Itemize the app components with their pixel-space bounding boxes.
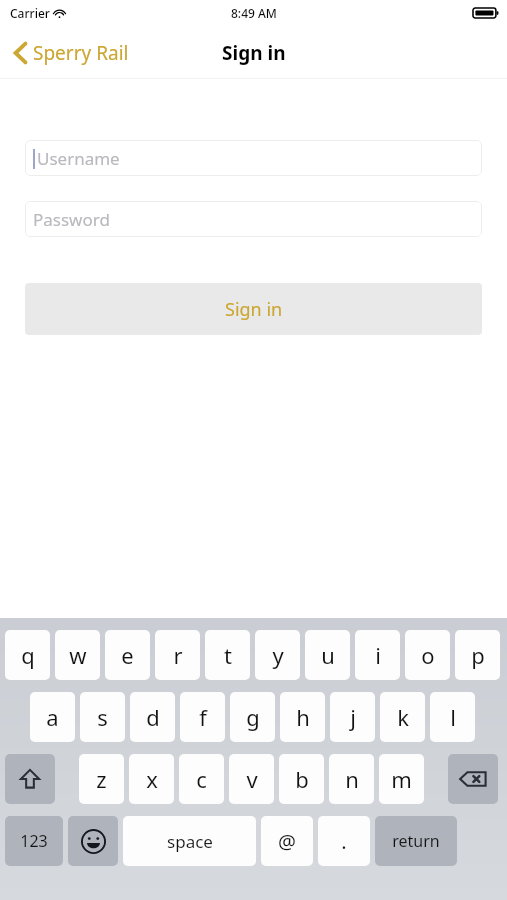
button[interactable]: g — [230, 692, 275, 742]
button[interactable]: b — [279, 754, 324, 804]
button[interactable]: i — [355, 630, 400, 680]
staticText: v — [246, 764, 258, 794]
staticText: Password — [33, 208, 110, 231]
button[interactable]: o — [405, 630, 450, 680]
button[interactable]: x — [129, 754, 174, 804]
button[interactable]: r — [155, 630, 200, 680]
staticText: d — [146, 702, 160, 732]
button[interactable]: h — [280, 692, 325, 742]
button[interactable]: Backspace — [448, 754, 498, 804]
button[interactable]: Password — [25, 201, 482, 237]
staticText: t — [224, 640, 232, 670]
staticText: f — [199, 702, 207, 732]
button[interactable]: p — [455, 630, 500, 680]
staticText: 8:49 AM — [231, 5, 277, 21]
button[interactable]: Back to Sperry Rail — [10, 34, 133, 72]
button[interactable]: Sign in — [25, 283, 482, 335]
button[interactable]: w — [55, 630, 100, 680]
staticText: Sperry Rail — [33, 40, 129, 66]
button[interactable]: k — [380, 692, 425, 742]
button[interactable]: . — [318, 816, 370, 866]
staticText: . — [341, 828, 347, 855]
staticText: p — [471, 640, 485, 670]
staticText: k — [397, 702, 409, 732]
button[interactable]: n — [329, 754, 374, 804]
button[interactable]: u — [305, 630, 350, 680]
staticText: e — [121, 640, 134, 670]
staticText: j — [350, 702, 356, 732]
button[interactable]: return — [375, 816, 457, 866]
button[interactable]: space — [123, 816, 256, 866]
staticText: c — [196, 764, 207, 794]
staticText: o — [421, 640, 435, 670]
staticText: Carrier — [10, 5, 50, 21]
staticText: return — [392, 830, 440, 852]
button[interactable]: v — [229, 754, 274, 804]
staticText: m — [391, 764, 412, 794]
staticText: z — [96, 764, 107, 794]
staticText: b — [295, 764, 309, 794]
staticText: w — [69, 640, 87, 670]
button[interactable]: Shift — [5, 754, 55, 804]
staticText: l — [450, 702, 456, 732]
button[interactable]: Username — [25, 140, 482, 176]
button[interactable]: t — [205, 630, 250, 680]
staticText: u — [321, 640, 335, 670]
button[interactable]: a — [30, 692, 75, 742]
button[interactable]: e — [105, 630, 150, 680]
staticText: Sign in — [225, 297, 283, 322]
staticText: q — [21, 640, 35, 670]
staticText: h — [296, 702, 310, 732]
staticText: i — [375, 640, 381, 670]
staticText: y — [272, 640, 284, 670]
staticText: s — [97, 702, 108, 732]
button[interactable]: q — [5, 630, 50, 680]
button[interactable]: f — [180, 692, 225, 742]
button[interactable]: @ — [261, 816, 313, 866]
button[interactable]: y — [255, 630, 300, 680]
staticText: Username — [37, 147, 120, 170]
staticText: Sign in — [222, 40, 286, 66]
button[interactable]: z — [79, 754, 124, 804]
button[interactable]: l — [430, 692, 475, 742]
staticText: a — [46, 702, 59, 732]
button[interactable]: Emoji — [68, 816, 118, 866]
button[interactable]: m — [379, 754, 424, 804]
button[interactable]: c — [179, 754, 224, 804]
button[interactable]: 123 — [5, 816, 63, 866]
staticText: n — [345, 764, 359, 794]
staticText: x — [146, 764, 158, 794]
button[interactable]: s — [80, 692, 125, 742]
staticText: g — [246, 702, 260, 732]
button[interactable]: j — [330, 692, 375, 742]
staticText: 123 — [20, 830, 48, 852]
staticText: r — [173, 640, 183, 670]
staticText: @ — [278, 828, 296, 855]
button[interactable]: d — [130, 692, 175, 742]
staticText: space — [167, 830, 213, 853]
